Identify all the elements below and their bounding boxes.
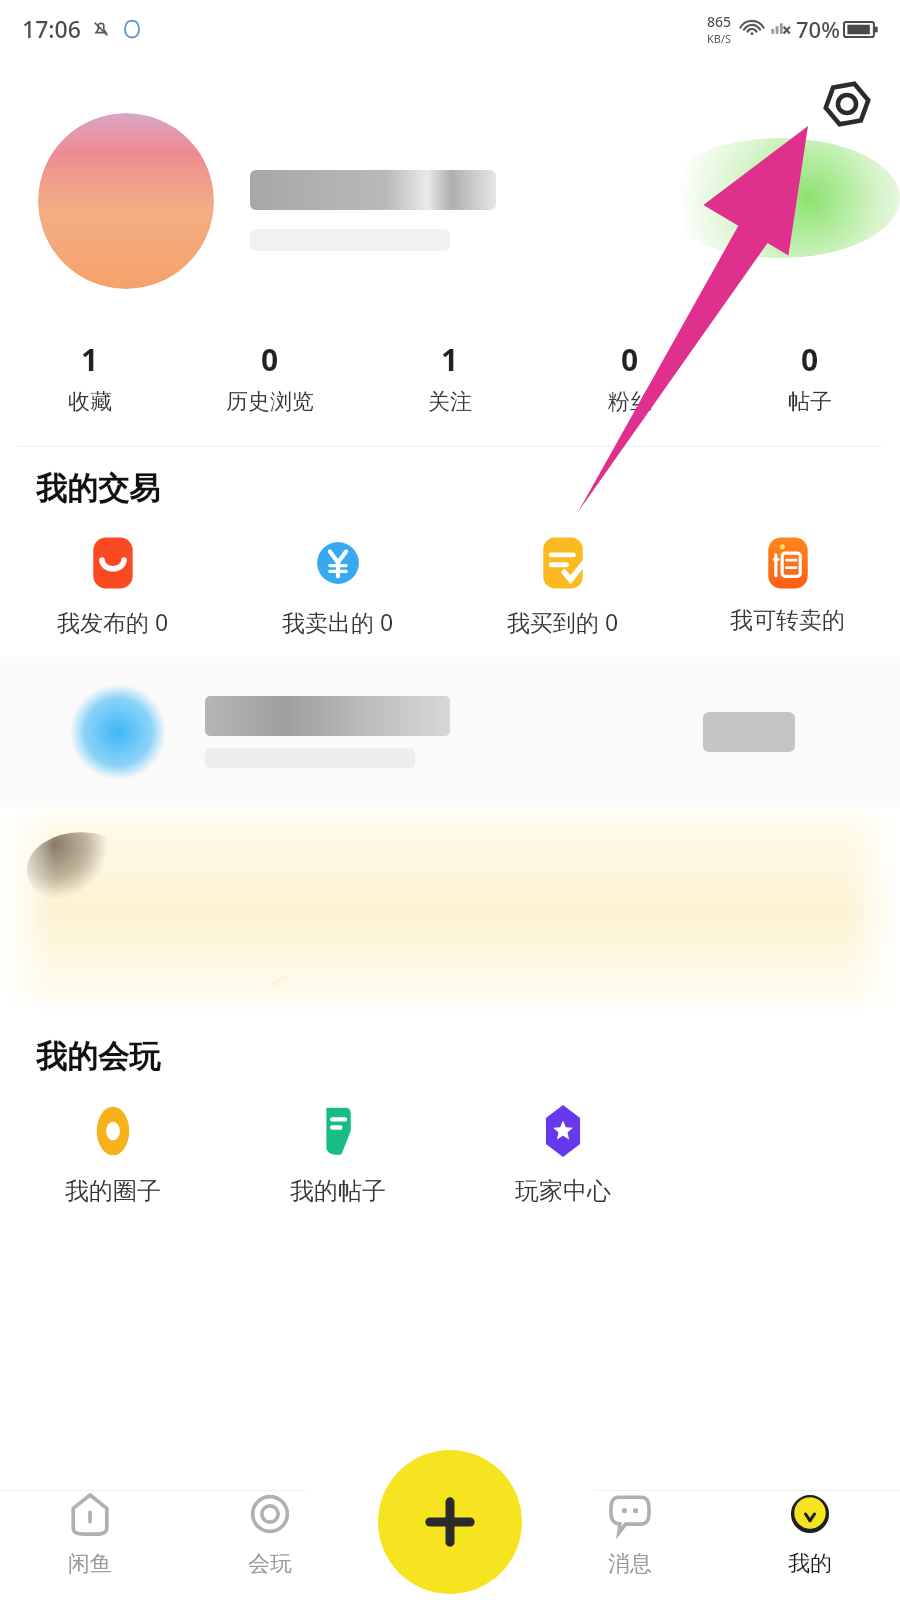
button[interactable]: 我卖出的 0 — [225, 532, 450, 639]
staticText: 70% — [796, 14, 840, 44]
staticText: 我的帖子 — [290, 1176, 386, 1206]
button[interactable]: 我买到的 0 — [450, 532, 675, 639]
staticText: 0 — [261, 339, 279, 380]
staticText: 0 — [621, 339, 639, 380]
button[interactable]: 我的圈子 — [0, 1100, 225, 1208]
button[interactable]: 0 — [540, 335, 720, 420]
staticText: 我的 — [788, 1550, 832, 1578]
button[interactable]: 会玩 — [180, 1452, 360, 1600]
button[interactable]: 1 — [360, 335, 540, 420]
staticText: 0 — [801, 339, 819, 380]
staticText: 收藏 — [68, 388, 112, 416]
button[interactable]: Settings — [820, 77, 874, 131]
button[interactable]: 我可转卖的 — [675, 532, 900, 637]
button[interactable]: 闲鱼 — [0, 1452, 180, 1600]
button[interactable]: 1 — [0, 335, 180, 420]
staticText: 我的圈子 — [65, 1176, 161, 1206]
staticText: 我的交易 — [36, 469, 160, 508]
staticText: 消息 — [608, 1550, 652, 1578]
staticText: 关注 — [428, 388, 472, 416]
staticText: 会玩 — [248, 1550, 292, 1578]
staticText: 我发布的 0 — [57, 606, 169, 637]
button[interactable]: 玩家中心 — [450, 1100, 675, 1208]
button[interactable]: 消息 — [540, 1452, 720, 1600]
staticText: 1 — [441, 339, 459, 380]
staticText: 粉丝 — [608, 388, 652, 416]
staticText: 我可转卖的 — [730, 606, 845, 635]
staticText: 历史浏览 — [226, 388, 314, 416]
button[interactable]: Avatar — [38, 113, 214, 289]
staticText: 闲鱼 — [68, 1550, 112, 1578]
staticText: 玩家中心 — [515, 1176, 611, 1206]
button[interactable]: 我的 — [720, 1452, 900, 1600]
staticText: 1 — [81, 339, 99, 380]
staticText: 帖子 — [788, 388, 832, 416]
staticText: KB/S — [707, 31, 732, 46]
staticText: 我的会玩 — [36, 1037, 160, 1076]
staticText: 我卖出的 0 — [282, 606, 394, 637]
staticText: 865 — [707, 12, 732, 31]
staticText: 17:06 — [22, 13, 81, 44]
button[interactable]: 我发布的 0 — [0, 532, 225, 639]
button[interactable]: 0 — [180, 335, 360, 420]
staticText: 我买到的 0 — [507, 606, 619, 637]
button[interactable]: 0 — [720, 335, 900, 420]
button[interactable]: 我的帖子 — [225, 1100, 450, 1208]
button[interactable]: Publish — [378, 1450, 522, 1594]
